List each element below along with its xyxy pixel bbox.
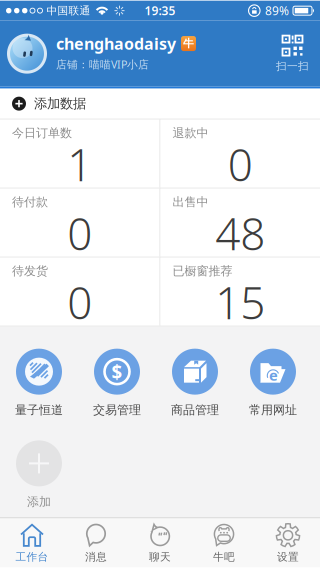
button[interactable]: 牛吧 [192, 518, 256, 567]
staticText: 今日订单数 [12, 126, 72, 140]
button[interactable]: 设置 [256, 518, 320, 567]
staticText: 消息 [85, 550, 107, 563]
staticText: $ [111, 359, 122, 384]
staticText: 添加 [27, 494, 51, 509]
button[interactable]: 添加 [0, 440, 78, 509]
staticText: 15 [215, 273, 265, 331]
staticText: 添加数据 [34, 95, 86, 112]
staticText: 聊天 [149, 550, 171, 563]
button[interactable]: 工作台 [0, 518, 64, 567]
staticText: 89% [265, 3, 289, 19]
button[interactable]: 今日订单数 [0, 120, 159, 188]
staticText: 48 [215, 204, 265, 262]
staticText: chenghaodaisy [56, 33, 176, 54]
button[interactable]: 待发货 [0, 258, 159, 326]
staticText: 交易管理 [93, 403, 141, 417]
staticText: 已橱窗推荐 [172, 264, 232, 278]
button[interactable]: 量子恒道 [0, 349, 78, 417]
staticText: 待付款 [12, 195, 48, 209]
staticText: 量子恒道 [15, 403, 63, 417]
staticText: 0 [67, 273, 92, 331]
button[interactable]: e [234, 349, 312, 417]
button[interactable]: $ [78, 349, 156, 417]
staticText: 19:35 [144, 3, 175, 19]
staticText: 设置 [277, 550, 299, 563]
staticText: 中国联通 [46, 4, 90, 17]
staticText: 0 [228, 135, 253, 193]
button[interactable]: 头像 [7, 34, 47, 74]
staticText: 店铺：喵喵VIP小店 [56, 57, 149, 71]
staticText: 常用网址 [249, 403, 297, 417]
staticText: 扫一扫 [276, 60, 309, 73]
staticText: 1 [67, 135, 92, 193]
button[interactable]: 已橱窗推荐 [160, 258, 320, 326]
button[interactable]: 添加数据 [0, 89, 320, 119]
staticText: 牛 [183, 37, 194, 50]
staticText: 退款中 [172, 126, 208, 140]
staticText: 工作台 [15, 550, 48, 563]
button[interactable]: 消息 [64, 518, 128, 567]
button[interactable]: 扫一扫 [276, 35, 309, 73]
button[interactable]: 待付款 [0, 189, 159, 257]
staticText: 待发货 [12, 264, 48, 278]
staticText: 出售中 [172, 195, 208, 209]
staticText: 牛吧 [213, 550, 235, 563]
staticText: e [269, 365, 278, 385]
button[interactable]: 商品管理 [156, 349, 234, 417]
staticText: 商品管理 [171, 403, 219, 417]
button[interactable]: 出售中 [160, 189, 320, 257]
button[interactable]: 退款中 [160, 120, 320, 188]
staticText: 0 [67, 204, 92, 262]
button[interactable]: 聊天 [128, 518, 192, 567]
